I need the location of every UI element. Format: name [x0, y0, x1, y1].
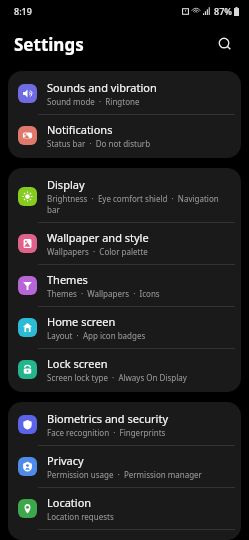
button[interactable]: Location	[8, 488, 241, 529]
button[interactable]: Sounds and vibration	[8, 73, 241, 114]
staticText: Sound mode · Ringtone	[47, 96, 140, 107]
staticText: Sounds and vibration	[47, 80, 157, 95]
button[interactable]: Search	[211, 30, 239, 58]
staticText: Home screen	[47, 314, 116, 329]
button[interactable]: Lock screen	[8, 349, 241, 390]
staticText: Status bar · Do not disturb	[47, 138, 151, 149]
staticText: 8:19	[14, 5, 32, 17]
staticText: Themes · Wallpapers · Icons	[47, 288, 160, 299]
button[interactable]: Notifications	[8, 115, 241, 156]
staticText: Wallpaper and style	[47, 230, 149, 245]
staticText: Location requests	[47, 511, 114, 522]
staticText: Display	[47, 177, 85, 192]
staticText: Screen lock type · Always On Display	[47, 372, 187, 383]
button[interactable]: Themes	[8, 265, 241, 306]
button[interactable]: Display	[8, 170, 241, 222]
button[interactable]: Safety and emergency	[8, 530, 241, 538]
staticText: Privacy	[47, 453, 84, 468]
staticText: Face recognition · Fingerprints	[47, 427, 166, 438]
staticText: Settings	[14, 33, 84, 56]
button[interactable]: Biometrics and security	[8, 404, 241, 445]
staticText: Wallpapers · Color palette	[47, 246, 148, 257]
staticText: Themes	[47, 272, 88, 287]
staticText: Layout · App icon badges	[47, 330, 146, 341]
staticText: Lock screen	[47, 356, 108, 371]
staticText: Permission usage · Permission manager	[47, 469, 202, 480]
staticText: Notifications	[47, 122, 113, 137]
staticText: 87%	[214, 5, 232, 17]
button[interactable]: Privacy	[8, 446, 241, 487]
button[interactable]: Home screen	[8, 307, 241, 348]
staticText: Biometrics and security	[47, 411, 168, 426]
button[interactable]: Wallpaper and style	[8, 223, 241, 264]
staticText: Brightness · Eye comfort shield · Naviga…	[47, 193, 231, 215]
staticText: Location	[47, 495, 92, 510]
